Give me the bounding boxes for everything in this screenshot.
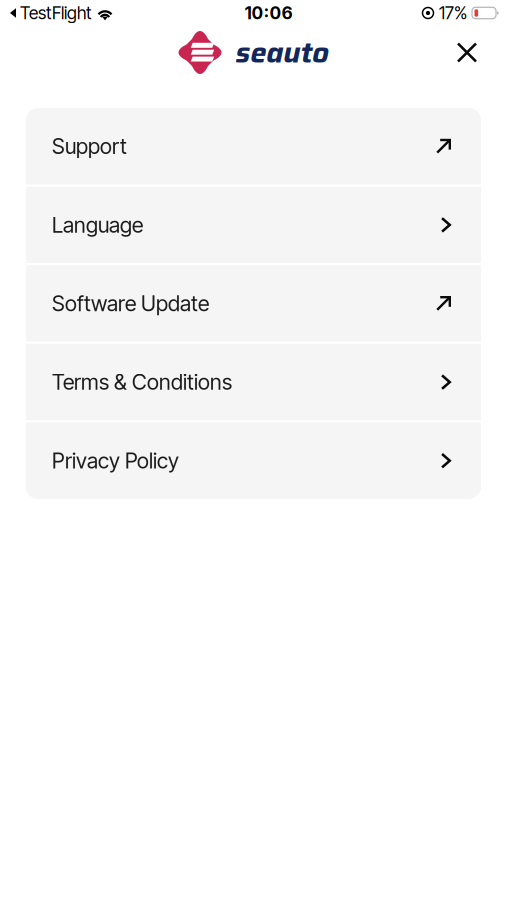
button[interactable]: Close [445,30,489,74]
staticText: Support [52,133,127,159]
staticText: Terms & Conditions [52,369,232,395]
staticText: Language [52,212,143,238]
button[interactable]: Support [26,108,481,185]
staticText: Software Update [52,291,209,316]
staticText: Privacy Policy [52,448,179,474]
button[interactable]: Software Update [26,265,481,342]
button[interactable]: Terms & Conditions [26,344,481,420]
button[interactable]: Language [26,187,481,263]
staticText: 10:06 [244,2,292,23]
staticText: seauto [235,30,328,75]
staticText: TestFlight [20,2,91,23]
staticText: 17% [439,2,467,23]
button[interactable]: Privacy Policy [26,422,481,499]
